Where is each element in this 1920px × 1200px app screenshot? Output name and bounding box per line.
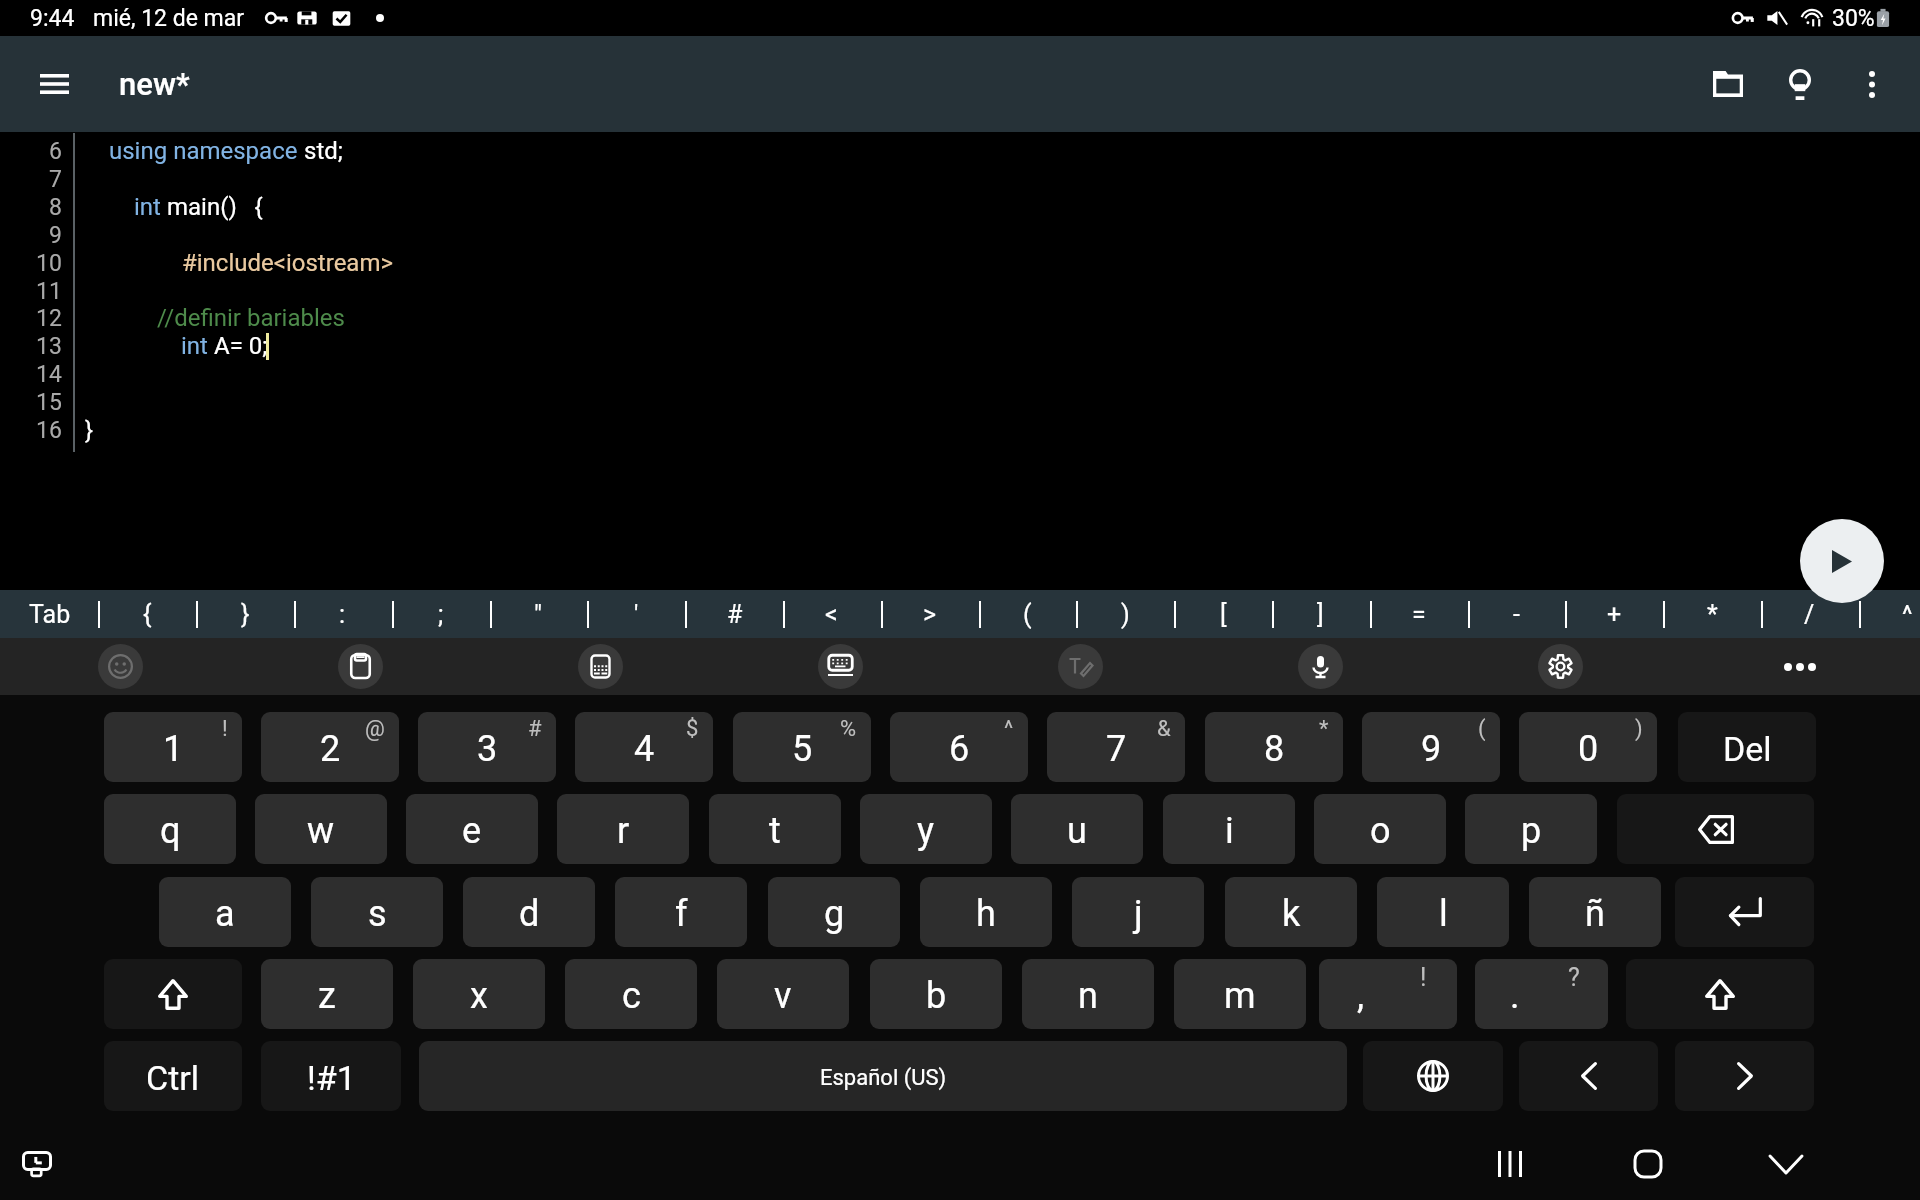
staticText: 15 xyxy=(36,389,62,416)
button[interactable]: Handwriting xyxy=(960,638,1200,695)
button[interactable]: Español (US) xyxy=(419,1041,1347,1111)
button[interactable]: Hide keyboard xyxy=(1750,1128,1822,1200)
button[interactable]: o xyxy=(1314,794,1446,864)
button[interactable]: k xyxy=(1225,877,1357,947)
staticText: ! xyxy=(1420,963,1427,992)
button[interactable]: * xyxy=(1664,590,1761,638)
button[interactable]: h xyxy=(920,877,1052,947)
button[interactable]: < xyxy=(783,590,880,638)
button[interactable]: n xyxy=(1022,959,1154,1029)
button[interactable]: Keyboard mode xyxy=(720,638,960,695)
button[interactable]: x xyxy=(413,959,545,1029)
button[interactable]: 3 xyxy=(418,712,556,782)
button[interactable]: ^ xyxy=(1859,590,1920,638)
button[interactable]: 8 xyxy=(1205,712,1343,782)
button[interactable]: # xyxy=(686,590,783,638)
button[interactable]: > xyxy=(881,590,978,638)
button[interactable]: 1 xyxy=(104,712,242,782)
button[interactable]: f xyxy=(615,877,747,947)
button[interactable]: { xyxy=(99,590,196,638)
button[interactable]: t xyxy=(709,794,841,864)
staticText: y xyxy=(917,810,935,852)
button[interactable]: m xyxy=(1174,959,1306,1029)
button[interactable]: Run xyxy=(1800,519,1884,603)
button[interactable]: Keyboard settings xyxy=(7,1134,67,1194)
button[interactable]: !#1 xyxy=(261,1041,401,1111)
button[interactable]: Shift xyxy=(1626,959,1814,1029)
button[interactable]: a xyxy=(159,877,291,947)
button[interactable]: : xyxy=(294,590,391,638)
button[interactable]: [ xyxy=(1175,590,1272,638)
button[interactable]: , xyxy=(1319,959,1457,1029)
staticText: 9:44 xyxy=(30,5,75,32)
button[interactable]: s xyxy=(311,877,443,947)
button[interactable]: 0 xyxy=(1519,712,1657,782)
staticText: 13 xyxy=(36,333,62,360)
button[interactable]: c xyxy=(565,959,697,1029)
button[interactable]: r xyxy=(557,794,689,864)
button[interactable]: Ctrl xyxy=(104,1041,242,1111)
button[interactable]: + xyxy=(1566,590,1663,638)
button[interactable]: Emoji xyxy=(0,638,240,695)
button[interactable]: 7 xyxy=(1047,712,1185,782)
button[interactable]: Shift xyxy=(104,959,242,1029)
button[interactable]: 9 xyxy=(1362,712,1500,782)
button[interactable]: Tab xyxy=(1,590,98,638)
button[interactable]: Clipboard xyxy=(240,638,480,695)
staticText: i xyxy=(1225,810,1234,852)
button[interactable]: Enter xyxy=(1675,877,1814,947)
button[interactable]: Backspace xyxy=(1617,794,1814,864)
button[interactable]: u xyxy=(1011,794,1143,864)
button[interactable]: Recent apps xyxy=(1474,1128,1546,1200)
button[interactable]: 5 xyxy=(733,712,871,782)
button[interactable]: 2 xyxy=(261,712,399,782)
button[interactable]: v xyxy=(717,959,849,1029)
staticText: std; xyxy=(304,137,343,165)
button[interactable]: ñ xyxy=(1529,877,1661,947)
button[interactable]: d xyxy=(463,877,595,947)
staticText: [ xyxy=(1220,600,1227,629)
button[interactable]: j xyxy=(1072,877,1204,947)
button[interactable]: i xyxy=(1163,794,1295,864)
button[interactable]: y xyxy=(860,794,992,864)
staticText: { xyxy=(143,600,152,629)
button[interactable]: Number pad xyxy=(480,638,720,695)
button[interactable]: ; xyxy=(392,590,489,638)
button[interactable]: More options xyxy=(1836,36,1908,132)
button[interactable]: l xyxy=(1377,877,1509,947)
button[interactable]: ' xyxy=(588,590,685,638)
button[interactable]: " xyxy=(490,590,587,638)
staticText: k xyxy=(1282,893,1301,935)
button[interactable]: Voice input xyxy=(1200,638,1440,695)
button[interactable]: Move left xyxy=(1519,1041,1658,1111)
button[interactable]: / xyxy=(1761,590,1858,638)
button[interactable]: Move right xyxy=(1675,1041,1814,1111)
button[interactable]: q xyxy=(104,794,236,864)
button[interactable]: g xyxy=(768,877,900,947)
button[interactable]: ] xyxy=(1272,590,1369,638)
staticText: 9 xyxy=(49,222,62,249)
button[interactable]: Open navigation menu xyxy=(6,36,102,132)
button[interactable]: e xyxy=(406,794,538,864)
button[interactable]: Home xyxy=(1612,1128,1684,1200)
button[interactable]: More xyxy=(1680,638,1920,695)
button[interactable]: b xyxy=(870,959,1002,1029)
button[interactable]: Open file xyxy=(1692,36,1764,132)
button[interactable]: Settings xyxy=(1440,638,1680,695)
button[interactable]: . xyxy=(1475,959,1608,1029)
button[interactable]: } xyxy=(197,590,294,638)
staticText: - xyxy=(1513,600,1520,629)
button[interactable]: Suggestions xyxy=(1764,36,1836,132)
button[interactable]: Change language xyxy=(1363,1041,1503,1111)
button[interactable]: ( xyxy=(979,590,1076,638)
button[interactable]: p xyxy=(1465,794,1597,864)
button[interactable]: - xyxy=(1468,590,1565,638)
button[interactable]: z xyxy=(261,959,393,1029)
button[interactable]: 6 xyxy=(890,712,1028,782)
button[interactable]: 4 xyxy=(575,712,713,782)
button[interactable]: = xyxy=(1370,590,1467,638)
button[interactable]: w xyxy=(255,794,387,864)
button[interactable]: ) xyxy=(1077,590,1174,638)
button[interactable]: Del xyxy=(1678,712,1816,782)
staticText: m xyxy=(1224,975,1256,1017)
